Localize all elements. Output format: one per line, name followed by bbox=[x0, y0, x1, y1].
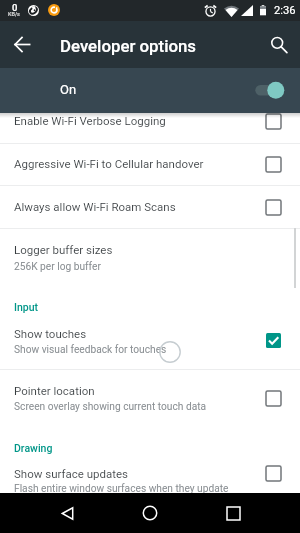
button[interactable] bbox=[0, 101, 300, 143]
button[interactable]: Home bbox=[133, 496, 167, 530]
staticText: Show surface updates bbox=[14, 467, 254, 480]
staticText: Aggressive Wi-Fi to Cellular handover bbox=[14, 157, 254, 170]
staticText: Input bbox=[14, 301, 39, 313]
button[interactable]: Search bbox=[263, 29, 294, 60]
button[interactable] bbox=[0, 312, 300, 369]
button[interactable]: Recent apps bbox=[216, 496, 250, 530]
button[interactable] bbox=[0, 144, 300, 185]
button[interactable] bbox=[0, 186, 300, 228]
staticText: Screen overlay showing current touch dat… bbox=[14, 401, 254, 413]
staticText: Logger buffer sizes bbox=[14, 243, 254, 256]
button[interactable]: Navigate up bbox=[7, 29, 38, 60]
staticText: 2:36 bbox=[274, 4, 296, 17]
staticText: Show visual feedback for touches bbox=[14, 344, 254, 356]
button[interactable]: On bbox=[0, 68, 300, 113]
staticText: KB/s bbox=[8, 11, 20, 17]
button[interactable]: Back bbox=[50, 496, 84, 530]
staticText: Drawing bbox=[14, 442, 53, 454]
staticText: Developer options bbox=[60, 36, 197, 56]
button[interactable] bbox=[0, 370, 300, 428]
staticText: 0 bbox=[12, 2, 18, 13]
staticText: 256K per log buffer bbox=[14, 261, 254, 273]
staticText: Flash entire window surfaces when they u… bbox=[14, 483, 254, 495]
staticText: Pointer location bbox=[14, 384, 254, 397]
staticText: Show touches bbox=[14, 327, 254, 340]
staticText: Enable Wi-Fi Verbose Logging bbox=[14, 114, 254, 127]
button[interactable] bbox=[0, 229, 300, 288]
button[interactable] bbox=[0, 453, 300, 493]
staticText: On bbox=[60, 82, 77, 97]
staticText: Always allow Wi-Fi Roam Scans bbox=[14, 200, 254, 213]
